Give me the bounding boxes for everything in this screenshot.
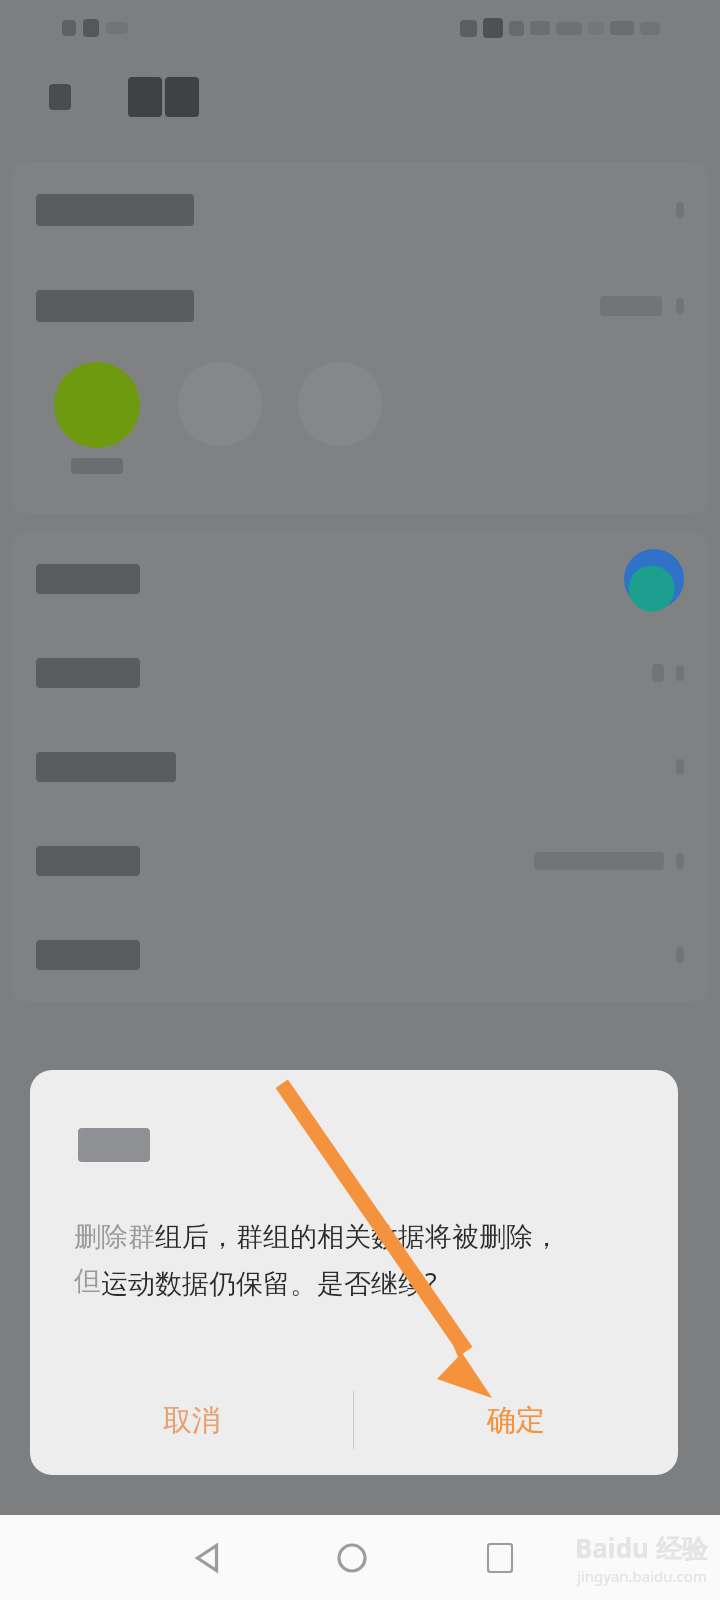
staticText: 删除群 bbox=[74, 1220, 155, 1254]
button[interactable]: Recents bbox=[470, 1528, 530, 1588]
button[interactable]: Back bbox=[177, 1528, 237, 1588]
button[interactable] bbox=[12, 258, 708, 354]
staticText: 组后，群组的相关数据将被删除， bbox=[155, 1220, 560, 1254]
button[interactable]: Back bbox=[36, 73, 84, 121]
button[interactable]: Home bbox=[322, 1528, 382, 1588]
button[interactable] bbox=[54, 362, 140, 448]
button[interactable] bbox=[12, 720, 708, 814]
button[interactable] bbox=[12, 626, 708, 720]
staticText: 运动数据仍保留。是否继续? bbox=[101, 1264, 437, 1301]
button[interactable]: 确定 bbox=[354, 1365, 678, 1475]
button[interactable]: 取消 bbox=[30, 1365, 353, 1475]
button[interactable] bbox=[12, 814, 708, 908]
staticText: 但 bbox=[74, 1264, 101, 1298]
staticText: 取消 bbox=[163, 1402, 221, 1439]
staticText: 确定 bbox=[487, 1402, 545, 1439]
button[interactable] bbox=[12, 162, 708, 258]
button[interactable] bbox=[12, 908, 708, 1002]
staticText: Baidu 经验 bbox=[575, 1530, 708, 1566]
button[interactable] bbox=[12, 532, 708, 626]
staticText: jingyan.baidu.com bbox=[577, 1566, 707, 1586]
